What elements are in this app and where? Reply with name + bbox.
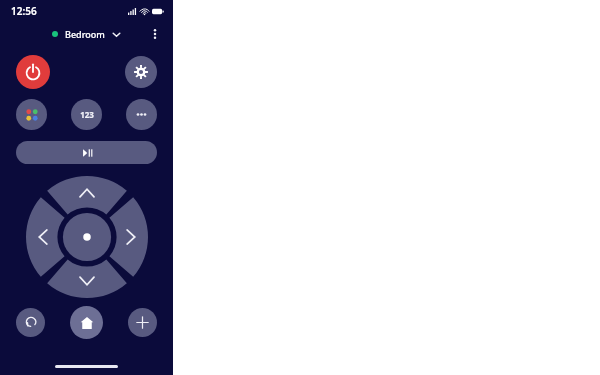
button[interactable]: Settings: [125, 56, 157, 88]
staticText: 12:56: [11, 4, 37, 18]
button[interactable]: More: [126, 99, 157, 130]
button[interactable]: Bedroom: [46, 25, 128, 43]
button[interactable]: Add: [128, 308, 157, 337]
button[interactable]: Play or pause: [16, 141, 157, 164]
button[interactable]: Number pad: [71, 99, 102, 130]
button[interactable]: Home: [70, 306, 103, 339]
button[interactable]: Power: [16, 55, 50, 89]
button[interactable]: Down: [65, 262, 109, 298]
button[interactable]: Up: [65, 176, 109, 212]
staticText: Bedroom: [65, 28, 105, 40]
button[interactable]: Left: [26, 215, 62, 259]
button[interactable]: Back: [16, 308, 45, 337]
staticText: 123: [80, 109, 94, 120]
button[interactable]: Color buttons: [16, 99, 47, 130]
button[interactable]: Right: [112, 215, 148, 259]
button[interactable]: More options: [145, 24, 165, 44]
button[interactable]: OK: [64, 214, 110, 260]
